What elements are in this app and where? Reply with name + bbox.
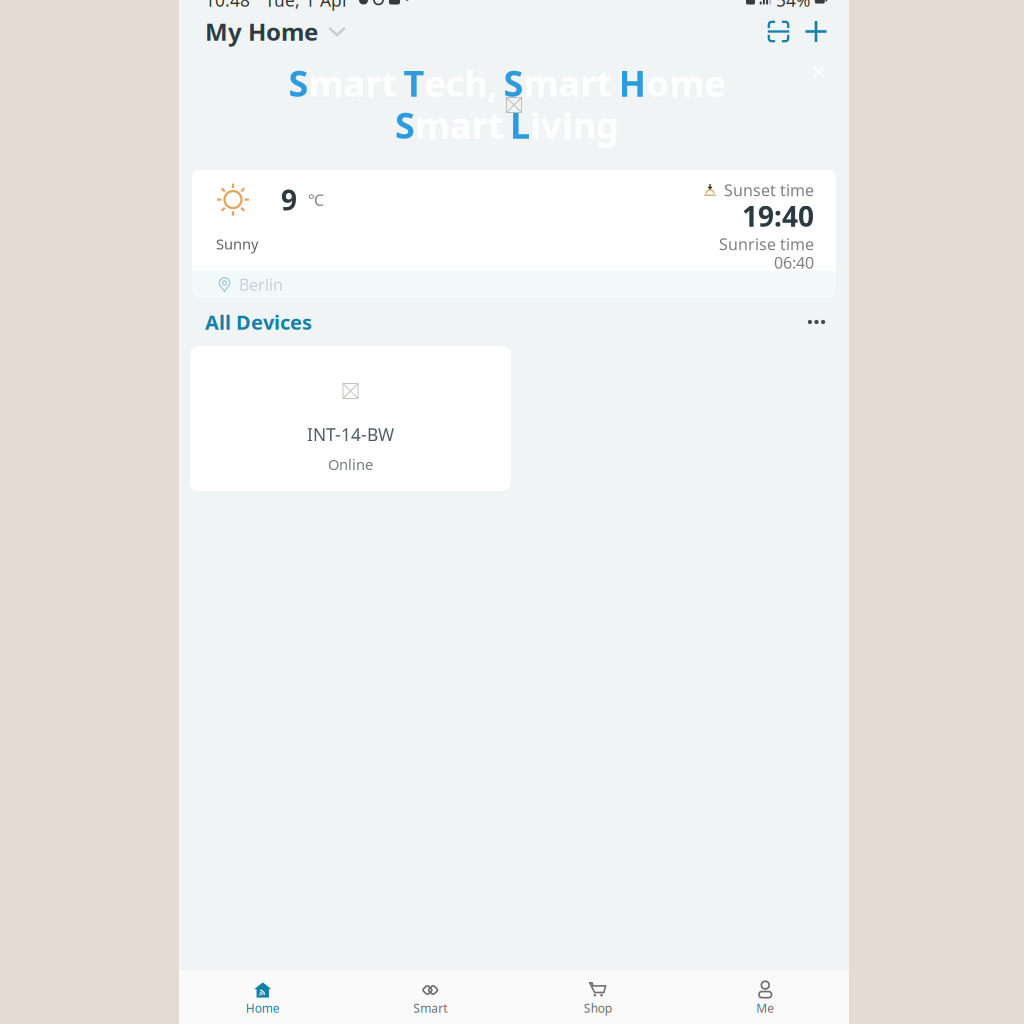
staticText: ℃: [308, 189, 324, 210]
staticText: mart: [415, 101, 504, 149]
staticText: Sunset time: [724, 179, 814, 201]
staticText: My Home: [205, 16, 318, 47]
staticText: S: [503, 59, 523, 107]
staticText: Sunny: [216, 234, 258, 254]
staticText: ome: [646, 59, 725, 107]
button[interactable]: Scan: [759, 12, 798, 51]
staticText: mart: [523, 59, 612, 107]
staticText: 06:40: [774, 252, 814, 273]
staticText: 9: [281, 181, 297, 218]
button[interactable]: More options: [798, 309, 835, 334]
staticText: Shop: [584, 1000, 612, 1016]
staticText: All Devices: [205, 309, 312, 335]
button[interactable]: Home: [179, 970, 346, 1024]
staticText: 19:40: [742, 197, 814, 235]
staticText: 54%: [776, 0, 810, 11]
button[interactable]: My Home: [205, 8, 346, 55]
staticText: S: [288, 59, 308, 107]
staticText: Smart: [413, 1000, 447, 1016]
staticText: Online: [328, 454, 373, 474]
button[interactable]: Me: [681, 970, 849, 1024]
staticText: T: [403, 59, 424, 107]
staticText: H: [618, 59, 646, 107]
staticText: mart: [308, 59, 397, 107]
staticText: ech,: [424, 59, 497, 107]
staticText: INT-14-BW: [307, 423, 394, 446]
button[interactable]: Shop: [514, 970, 681, 1024]
staticText: Berlin: [239, 274, 283, 295]
image: [506, 97, 522, 113]
staticText: Sunrise time: [719, 233, 814, 255]
staticText: S: [395, 101, 415, 149]
button[interactable]: Smart: [346, 970, 514, 1024]
staticText: Home: [246, 1000, 280, 1016]
staticText: Me: [756, 1000, 774, 1016]
staticText: L: [510, 101, 530, 149]
image: [342, 383, 358, 399]
button[interactable]: Add device: [798, 12, 826, 50]
staticText: 10:48 Tue, 1 Apr: [205, 0, 349, 11]
button[interactable]: INT-14-BW: [190, 346, 511, 491]
staticText: iving: [530, 101, 619, 149]
